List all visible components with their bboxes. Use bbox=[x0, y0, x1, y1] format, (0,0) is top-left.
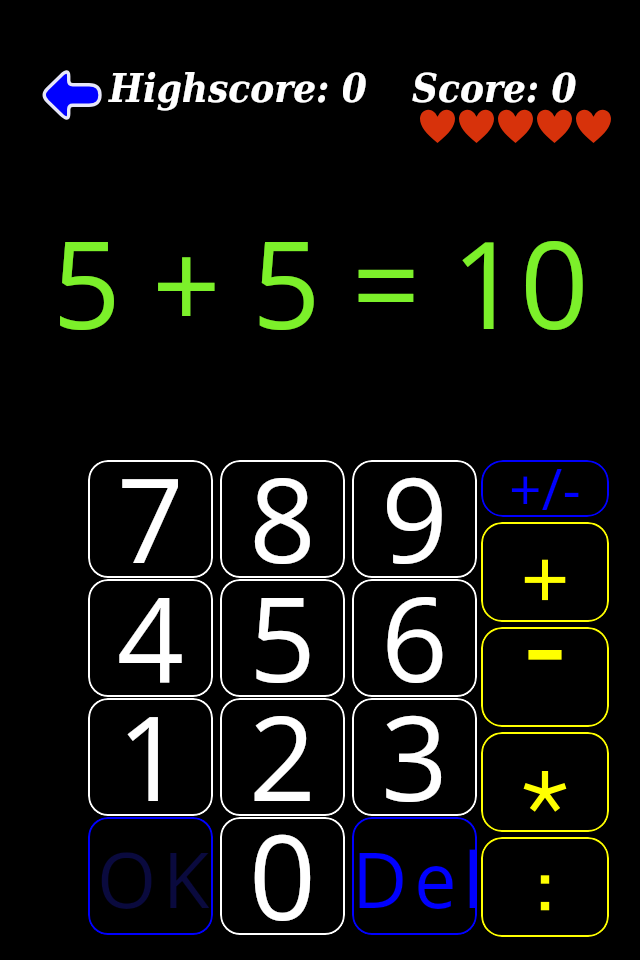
staticText: Del bbox=[352, 827, 477, 930]
button[interactable]: Plus bbox=[481, 522, 609, 622]
button[interactable]: 3 bbox=[352, 698, 477, 816]
button[interactable]: 4 bbox=[88, 579, 213, 697]
button[interactable]: Multiply bbox=[481, 732, 609, 832]
button[interactable]: Minus bbox=[481, 627, 609, 727]
button[interactable]: OK bbox=[88, 817, 213, 935]
staticText: 5 + 5 = 10 bbox=[52, 201, 589, 364]
button[interactable]: Divide bbox=[481, 837, 609, 937]
staticText: 8 bbox=[249, 460, 316, 578]
button[interactable]: 0 bbox=[220, 817, 345, 935]
button[interactable]: 2 bbox=[220, 698, 345, 816]
button[interactable]: Del bbox=[352, 817, 477, 935]
button[interactable]: 6 bbox=[352, 579, 477, 697]
staticText: +/- bbox=[509, 460, 581, 517]
staticText: Score: 0 bbox=[412, 64, 577, 111]
staticText: 5 bbox=[249, 579, 316, 697]
button[interactable]: Back bbox=[41, 68, 100, 122]
button[interactable]: 7 bbox=[88, 460, 213, 578]
staticText: 6 bbox=[381, 579, 448, 697]
staticText: 4 bbox=[117, 579, 184, 697]
staticText: Highscore: 0 bbox=[109, 64, 367, 111]
button[interactable]: 1 bbox=[88, 698, 213, 816]
staticText: 1 bbox=[117, 698, 184, 816]
staticText: 9 bbox=[381, 460, 448, 578]
button[interactable]: 8 bbox=[220, 460, 345, 578]
button[interactable]: +/- bbox=[481, 460, 609, 517]
staticText: 3 bbox=[381, 698, 448, 816]
staticText: 2 bbox=[249, 698, 316, 816]
button[interactable]: 5 bbox=[220, 579, 345, 697]
button[interactable]: 9 bbox=[352, 460, 477, 578]
staticText: 7 bbox=[117, 460, 184, 578]
staticText: OK bbox=[97, 827, 213, 930]
staticText: 0 bbox=[249, 817, 316, 935]
